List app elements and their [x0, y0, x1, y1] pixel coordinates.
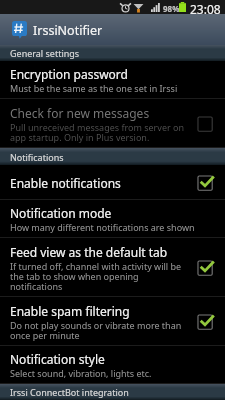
staticText: IrssiNotifier [33, 22, 103, 39]
button[interactable]: Notification style [0, 346, 225, 384]
staticText: If turned off, channel with activity wil… [10, 260, 186, 292]
staticText: Pull unreceived messages from server on … [10, 121, 186, 143]
staticText: Notifications [10, 151, 225, 163]
button[interactable]: IrssiNotifier [0, 14, 225, 45]
staticText: Enable notifications [10, 175, 121, 191]
button[interactable]: Check for new messages [0, 99, 225, 148]
button[interactable]: Encryption password [0, 61, 225, 99]
staticText: 23:08 [190, 1, 221, 15]
staticText: Irssi ConnectBot integration [10, 386, 225, 398]
staticText: General settings [10, 47, 225, 59]
staticText: Do not play sounds or vibrate more than … [10, 319, 186, 341]
staticText: Notification mode [10, 205, 112, 221]
staticText: Must be the same as the one set in Irssi [10, 82, 178, 94]
staticText: Select sound, vibration, lights etc. [10, 367, 152, 379]
staticText: How many different notifications are sho… [10, 221, 195, 233]
button[interactable]: Enable notifications [0, 165, 225, 200]
staticText: Enable spam filtering [10, 303, 130, 319]
staticText: Notification style [10, 351, 105, 367]
button[interactable]: Feed view as the default tab [0, 238, 225, 297]
button[interactable]: Enable spam filtering [0, 297, 225, 346]
staticText: 98% [163, 3, 180, 14]
staticText: Feed view as the default tab [10, 244, 168, 260]
staticText: Encryption password [10, 66, 128, 82]
button[interactable]: Notification mode [0, 200, 225, 238]
staticText: Check for new messages [10, 105, 150, 121]
